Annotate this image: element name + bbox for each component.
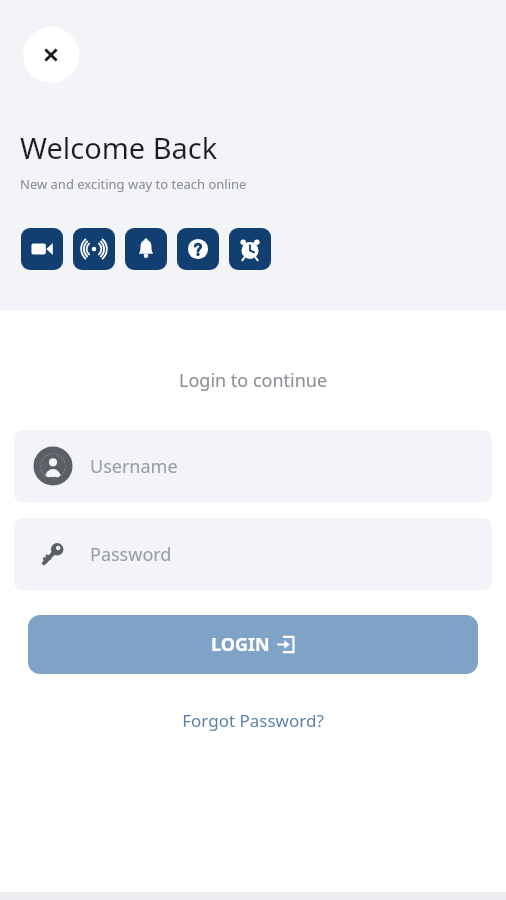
button[interactable]: LOGIN — [28, 615, 478, 674]
button[interactable]: Alarm — [229, 228, 271, 270]
button[interactable]: Close — [23, 27, 79, 83]
button[interactable]: Password — [14, 518, 492, 590]
button[interactable]: Notifications — [125, 228, 167, 270]
button[interactable]: Help — [177, 228, 219, 270]
staticText: Forgot Password? — [182, 709, 324, 732]
button[interactable]: Video call — [21, 228, 63, 270]
staticText: New and exciting way to teach online — [20, 175, 247, 193]
staticText: Welcome Back — [20, 128, 218, 167]
staticText: LOGIN — [211, 632, 270, 657]
button[interactable]: Username — [14, 430, 492, 502]
button[interactable]: Broadcast — [73, 228, 115, 270]
staticText: Password — [90, 542, 172, 567]
button[interactable]: Forgot Password? — [174, 705, 332, 736]
staticText: Username — [90, 454, 178, 479]
staticText: Login to continue — [179, 368, 328, 393]
